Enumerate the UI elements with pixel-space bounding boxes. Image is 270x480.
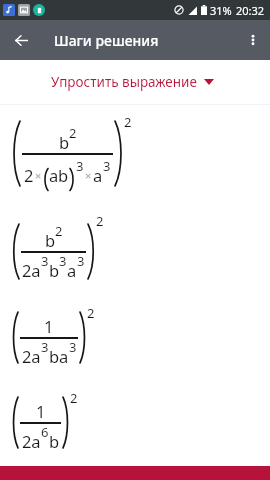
staticText: 6 [41, 423, 49, 441]
staticText: 3 [103, 157, 111, 175]
staticText: b [59, 130, 69, 152]
staticText: b [45, 228, 55, 250]
staticText: 20:32 [236, 3, 265, 18]
staticText: 3 [41, 252, 49, 270]
staticText: 2 [96, 212, 104, 230]
staticText: ba [49, 345, 69, 367]
button[interactable]: 1 [0, 301, 270, 373]
staticText: 3 [41, 338, 49, 356]
staticText: × [35, 168, 42, 183]
staticText: 2 [24, 164, 34, 186]
staticText: b [49, 430, 59, 452]
button[interactable]: b [0, 201, 270, 301]
staticText: 31% [210, 3, 232, 18]
staticText: Шаги решения [54, 31, 159, 50]
staticText: 2a [22, 430, 41, 452]
staticText: 2 [87, 303, 95, 321]
staticText: 2 [69, 124, 77, 142]
staticText: 2 [124, 113, 132, 131]
staticText: 3 [76, 157, 84, 175]
staticText: 1 [36, 399, 46, 421]
button[interactable]: b [0, 105, 270, 201]
staticText: 3 [77, 252, 85, 270]
staticText: 3 [69, 338, 77, 356]
staticText: a [93, 164, 103, 186]
staticText: × [85, 168, 92, 183]
staticText: 1 [44, 314, 54, 336]
staticText: 3 [59, 252, 67, 270]
staticText: a [67, 259, 77, 281]
staticText: 2 [70, 389, 78, 407]
button[interactable]: More options [241, 28, 265, 52]
button[interactable]: Back [9, 28, 33, 52]
staticText: 2 [55, 222, 63, 240]
staticText: 2a [22, 345, 41, 367]
button[interactable]: 1 [0, 373, 270, 472]
staticText: 2a [22, 259, 41, 281]
button[interactable]: Упростить выражение [0, 60, 270, 104]
staticText: ab [49, 164, 69, 186]
staticText: Упростить выражение [51, 73, 197, 91]
staticText: b [49, 259, 59, 281]
